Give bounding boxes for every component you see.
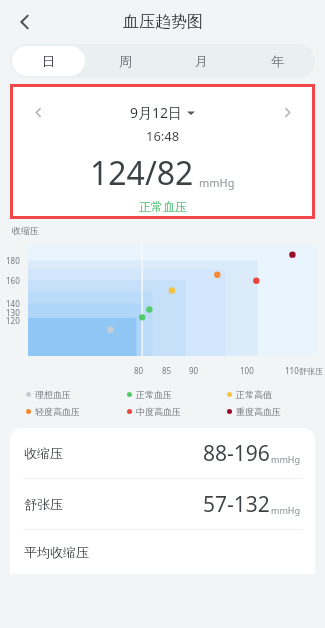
- staticText: 57-132: [203, 490, 270, 519]
- button[interactable]: 收缩压: [10, 428, 315, 478]
- staticText: 80: [134, 365, 144, 376]
- button[interactable]: 日: [12, 46, 85, 76]
- staticText: 180: [6, 255, 20, 266]
- staticText: 9月12日: [130, 103, 183, 122]
- button[interactable]: 周: [89, 46, 161, 76]
- staticText: 平均收缩压: [24, 544, 89, 560]
- button[interactable]: 年: [241, 46, 313, 76]
- staticText: 收缩压: [24, 445, 63, 461]
- staticText: 日: [42, 53, 55, 69]
- button[interactable]: 舒张压: [10, 479, 315, 529]
- staticText: 周: [119, 53, 132, 69]
- staticText: 130: [6, 307, 20, 318]
- staticText: 85: [162, 365, 172, 376]
- staticText: 收缩压: [12, 225, 39, 236]
- staticText: 月: [195, 53, 208, 69]
- staticText: 正常高值: [236, 389, 272, 400]
- staticText: 88-196: [203, 439, 270, 468]
- staticText: 124/82: [90, 151, 194, 195]
- staticText: 轻度高血压: [35, 406, 80, 417]
- staticText: mmHg: [271, 504, 301, 516]
- button[interactable]: 月: [165, 46, 237, 76]
- staticText: 16:48: [146, 127, 180, 145]
- staticText: 160: [6, 275, 20, 286]
- staticText: mmHg: [199, 175, 235, 190]
- staticText: 理想血压: [35, 389, 71, 400]
- staticText: 140: [6, 298, 20, 309]
- staticText: 100: [240, 365, 254, 376]
- staticText: 中度高血压: [136, 406, 181, 417]
- staticText: 110: [285, 365, 299, 376]
- staticText: 重度高血压: [236, 406, 281, 417]
- staticText: 年: [271, 53, 284, 69]
- button[interactable]: Next day: [274, 99, 300, 125]
- staticText: 90: [189, 365, 199, 376]
- staticText: 120: [6, 315, 20, 326]
- staticText: 舒张压: [24, 496, 63, 512]
- staticText: 血压趋势图: [123, 12, 203, 32]
- staticText: mmHg: [271, 453, 301, 465]
- staticText: 正常血压: [139, 199, 187, 214]
- button[interactable]: Back: [8, 5, 42, 39]
- button[interactable]: Previous day: [25, 99, 51, 125]
- staticText: 舒张压: [299, 366, 323, 376]
- staticText: 正常血压: [136, 389, 172, 400]
